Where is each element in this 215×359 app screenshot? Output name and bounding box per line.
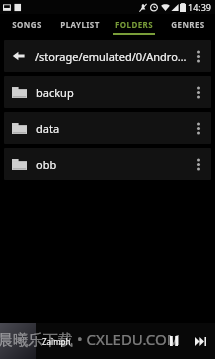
- button[interactable]: Next track: [187, 328, 213, 354]
- button[interactable]: FOLDERS: [107, 14, 161, 37]
- button[interactable]: Go up one folder: [4, 40, 211, 72]
- button[interactable]: More options: [187, 112, 209, 144]
- other: Go up one folder: [12, 49, 26, 63]
- staticText: SONGS: [12, 19, 42, 30]
- staticText: Zaimph: [42, 336, 71, 347]
- button[interactable]: Pause: [161, 328, 187, 354]
- staticText: data: [36, 121, 187, 136]
- staticText: FOLDERS: [115, 19, 153, 30]
- button[interactable]: SONGS: [0, 14, 53, 37]
- button[interactable]: data: [4, 112, 211, 144]
- staticText: backup: [36, 85, 187, 100]
- button[interactable]: Album art: [0, 323, 36, 359]
- button[interactable]: More options: [187, 76, 209, 108]
- button[interactable]: GENRES: [161, 14, 215, 37]
- button[interactable]: More options: [187, 148, 209, 180]
- button[interactable]: backup: [4, 76, 211, 108]
- staticText: /storage/emulated/0/Android: [35, 49, 187, 64]
- button[interactable]: More options: [187, 40, 209, 72]
- staticText: obb: [36, 157, 187, 172]
- staticText: PLAYLIST: [60, 19, 100, 30]
- staticText: 14:39: [188, 1, 212, 13]
- staticText: GENRES: [171, 19, 205, 30]
- button[interactable]: PLAYLIST: [53, 14, 107, 37]
- staticText: 晨曦乐下载 • CXLEDU.COM: [0, 329, 181, 349]
- button[interactable]: obb: [4, 148, 211, 180]
